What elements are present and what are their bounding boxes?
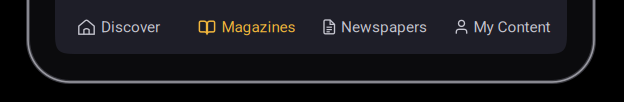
button[interactable]: Newspapers <box>311 3 439 51</box>
button[interactable]: Magazines <box>183 3 311 51</box>
button[interactable]: Discover <box>55 3 183 51</box>
staticText: Discover <box>101 18 160 36</box>
staticText: Magazines <box>221 18 295 36</box>
staticText: Newspapers <box>341 18 427 36</box>
button[interactable]: My Content <box>439 3 567 51</box>
staticText: My Content <box>473 18 550 36</box>
